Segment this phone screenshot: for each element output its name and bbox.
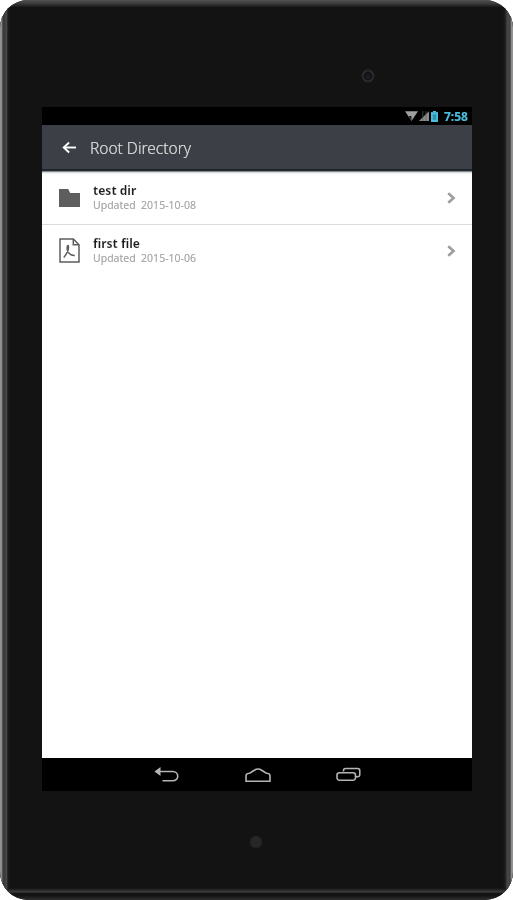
button[interactable]: Navigate up [42, 125, 90, 169]
button[interactable]: Back [121, 758, 212, 791]
staticText: test dir [93, 182, 137, 198]
staticText: 7:58 [444, 108, 468, 124]
staticText: first file [93, 235, 140, 251]
button[interactable]: Recent apps [303, 758, 394, 791]
button[interactable]: Home [212, 758, 303, 791]
button[interactable]: first file [42, 225, 472, 277]
staticText: Root Directory [90, 137, 192, 158]
button[interactable]: test dir [42, 172, 472, 224]
staticText: Updated 2015-10-08 [93, 198, 196, 212]
staticText: Updated 2015-10-06 [93, 251, 196, 265]
